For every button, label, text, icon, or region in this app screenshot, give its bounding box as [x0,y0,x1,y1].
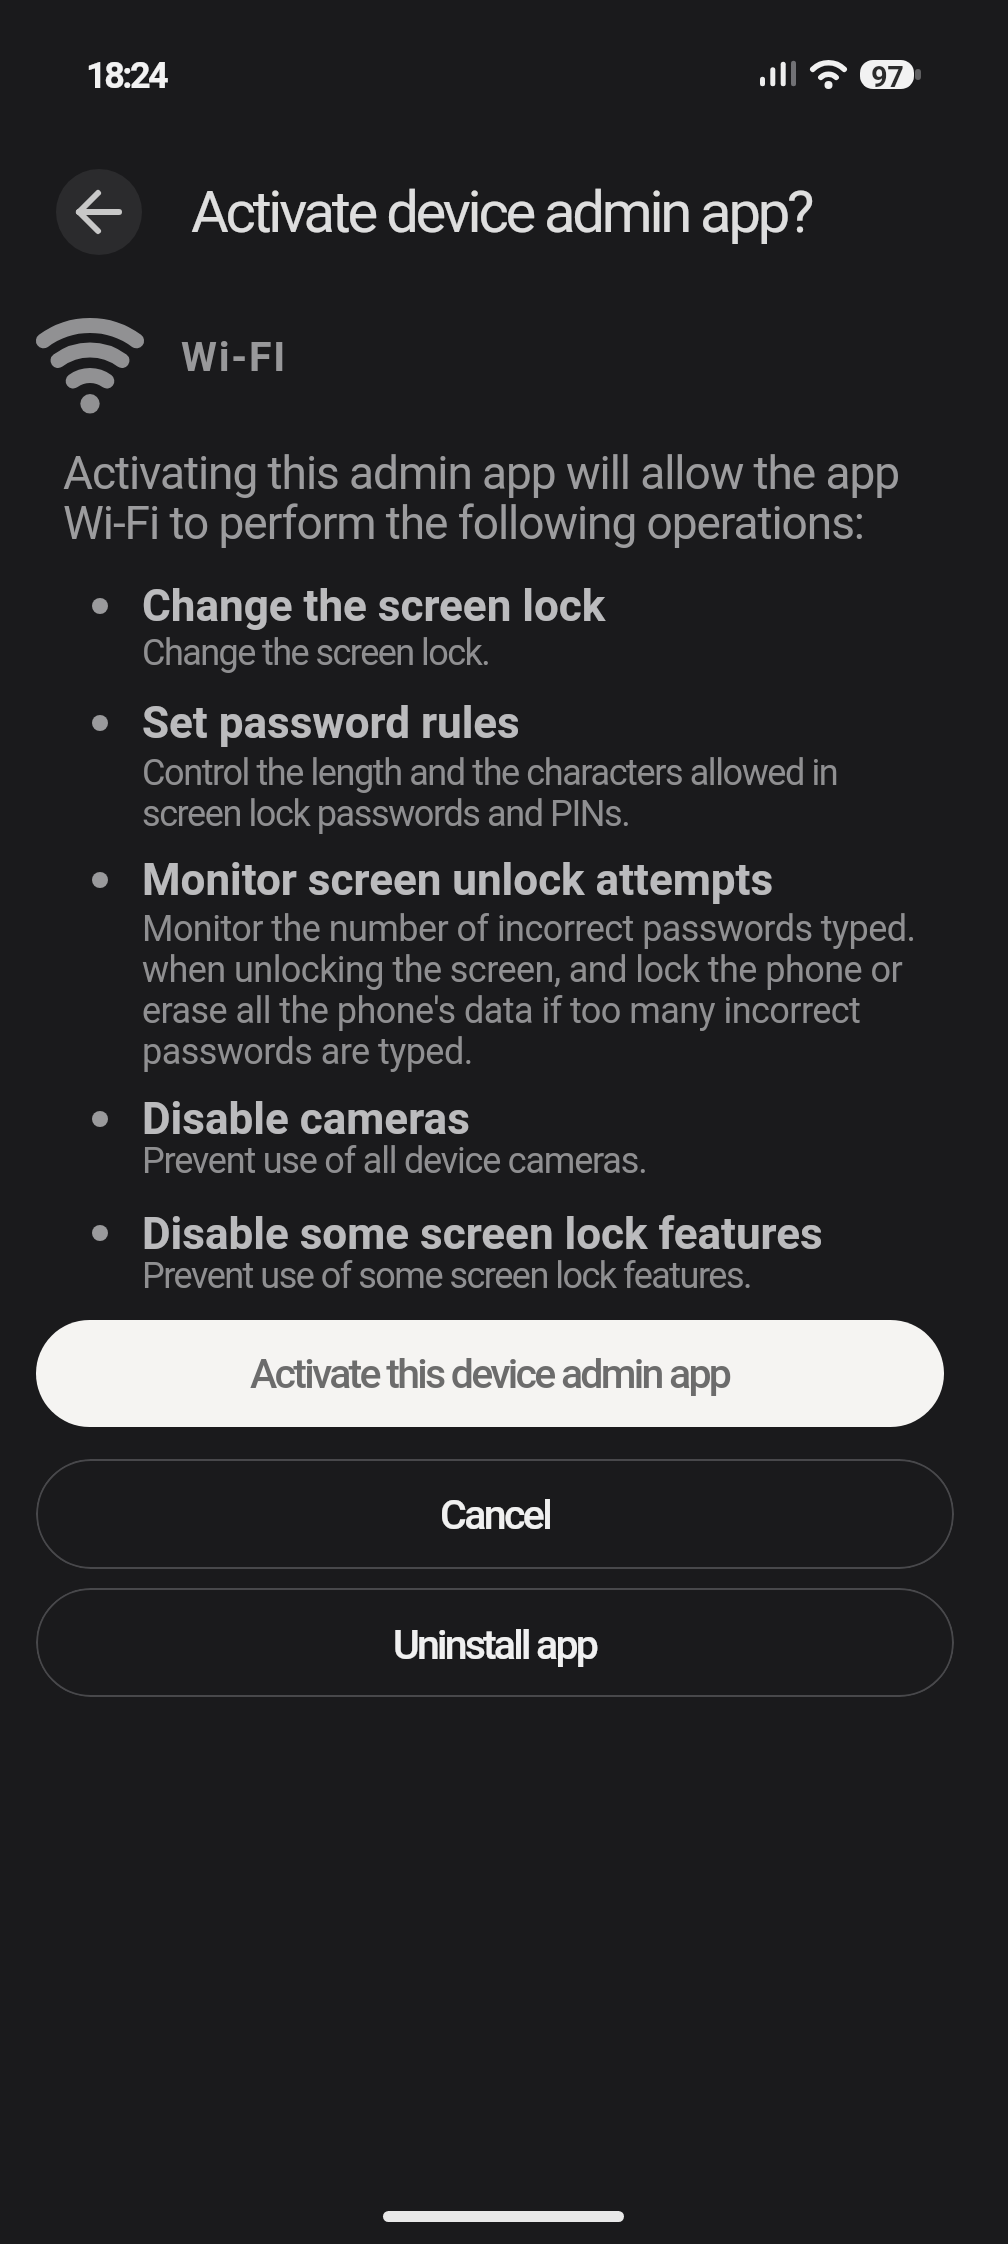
staticText: Monitor screen unlock attempts [142,854,774,906]
staticText: Disable some screen lock features [142,1208,823,1260]
staticText: Cancel [440,1491,551,1539]
staticText: 18:24 [86,55,167,97]
staticText: Change the screen lock. [142,632,490,674]
staticText: Wi-FI [181,333,288,381]
staticText: Disable cameras [142,1093,470,1145]
button[interactable]: Cancel [36,1459,954,1569]
staticText: Activating this admin app will allow the… [63,446,900,551]
staticText: Prevent use of all device cameras. [142,1140,647,1182]
staticText: Prevent use of some screen lock features… [142,1255,751,1297]
button[interactable] [56,169,142,255]
button[interactable]: Activate this device admin app [36,1320,944,1427]
staticText: Monitor the number of incorrect password… [142,908,916,1073]
staticText: Uninstall app [393,1621,597,1669]
staticText: Activate this device admin app [250,1350,730,1398]
staticText: Activate device admin app? [191,178,812,246]
staticText: 97 [871,60,904,89]
button[interactable]: Uninstall app [36,1588,954,1697]
staticText: Set password rules [142,697,520,749]
staticText: Change the screen lock [142,580,606,632]
staticText: Control the length and the characters al… [142,752,838,835]
